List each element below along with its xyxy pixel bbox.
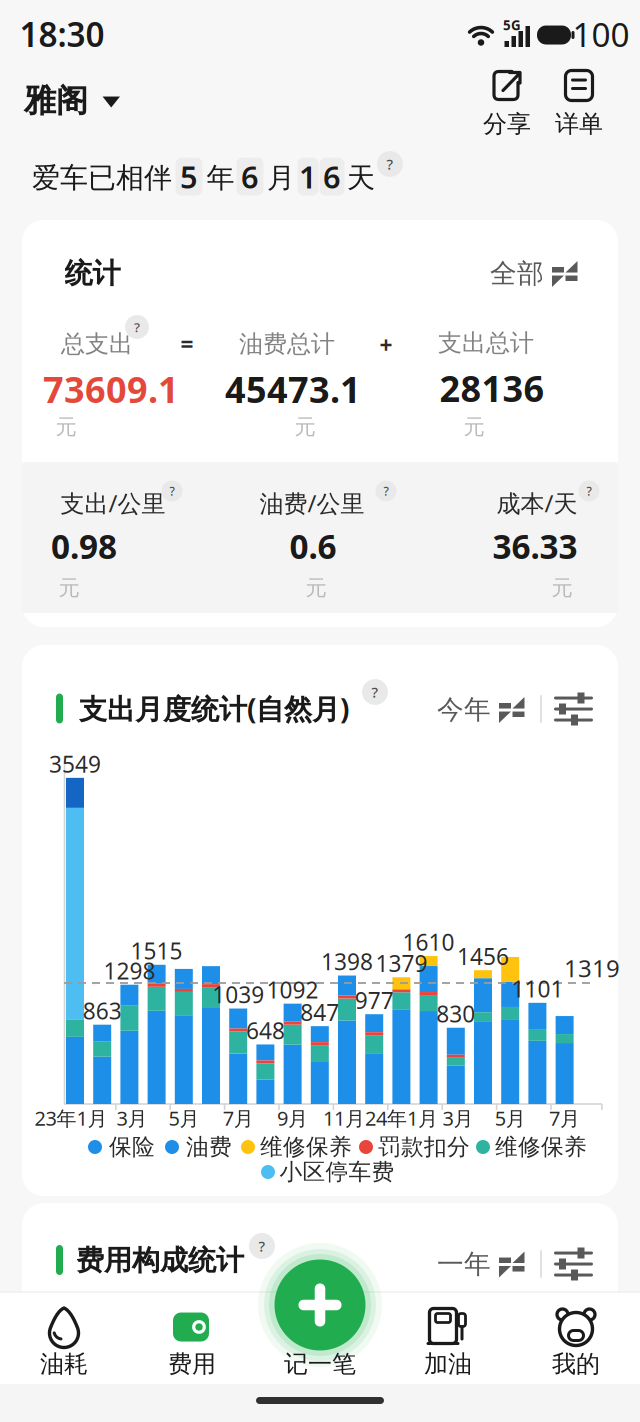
button[interactable]: ? <box>578 480 599 501</box>
staticText: 元 <box>551 575 572 601</box>
staticText: 24年1月 <box>365 1105 438 1131</box>
staticText: 油耗 <box>40 1349 88 1379</box>
button[interactable]: 全部 <box>490 251 582 295</box>
staticText: 1456 <box>457 941 509 971</box>
staticText: 3月 <box>442 1105 473 1131</box>
staticText: 一年 <box>437 1248 491 1280</box>
button[interactable]: 我的 <box>521 1302 631 1378</box>
button[interactable]: ? <box>362 679 388 705</box>
staticText: 支出月度统计(自然月) <box>79 690 349 727</box>
staticText: 油费 <box>186 1133 232 1161</box>
staticText: 6 <box>241 156 259 197</box>
button[interactable]: 加油 <box>393 1302 503 1378</box>
staticText: 1610 <box>403 927 455 957</box>
staticText: 1 <box>299 156 317 197</box>
staticText: 3月 <box>116 1105 147 1131</box>
staticText: 1039 <box>212 979 264 1010</box>
button[interactable] <box>550 1244 596 1284</box>
staticText: 月 <box>267 161 295 195</box>
staticText: 我的 <box>552 1349 600 1379</box>
staticText: 23年1月 <box>34 1105 107 1131</box>
staticText: ? <box>386 154 393 174</box>
button[interactable] <box>550 689 596 729</box>
staticText: 成本/天 <box>496 487 577 519</box>
staticText: 费用 <box>168 1349 216 1379</box>
staticText: ? <box>371 682 378 702</box>
staticText: 7月 <box>223 1105 254 1131</box>
staticText: 830 <box>436 999 475 1029</box>
button[interactable] <box>274 1259 365 1350</box>
button[interactable]: 详单 <box>537 70 621 134</box>
staticText: 18:30 <box>19 12 104 56</box>
staticText: 1092 <box>267 975 319 1005</box>
staticText: 5月 <box>495 1105 526 1131</box>
staticText: 5月 <box>168 1105 199 1131</box>
staticText: 0.6 <box>289 524 336 568</box>
staticText: 847 <box>300 997 339 1027</box>
staticText: 支出总计 <box>438 328 534 358</box>
staticText: 维修保养 <box>260 1133 352 1161</box>
staticText: 元 <box>463 414 484 440</box>
staticText: 油费总计 <box>239 329 335 359</box>
staticText: ? <box>258 1236 265 1256</box>
staticText: 分享 <box>483 109 531 139</box>
staticText: 费用构成统计 <box>76 1243 244 1278</box>
button[interactable]: ? <box>125 315 149 339</box>
staticText: 648 <box>246 1015 285 1045</box>
staticText: = <box>180 329 193 359</box>
staticText: 7月 <box>549 1105 580 1131</box>
staticText: ? <box>134 318 140 336</box>
staticText: 详单 <box>555 109 603 139</box>
staticText: 6 <box>323 156 341 197</box>
staticText: 元 <box>305 575 326 601</box>
staticText: 加油 <box>424 1349 472 1379</box>
button[interactable]: 雅阁 <box>20 76 130 126</box>
staticText: 罚款扣分 <box>378 1133 470 1161</box>
staticText: 雅阁 <box>24 81 88 120</box>
button[interactable]: 一年 <box>437 1242 529 1286</box>
staticText: 100 <box>572 12 629 56</box>
staticText: 总支出 <box>61 329 133 359</box>
button[interactable]: ? <box>375 480 396 501</box>
staticText: 统计 <box>64 256 120 291</box>
staticText: 1319 <box>564 952 620 984</box>
staticText: 支出/公里 <box>60 487 165 519</box>
staticText: 28136 <box>439 364 544 412</box>
staticText: 小区停车费 <box>279 1158 394 1186</box>
button[interactable]: ? <box>249 1233 275 1259</box>
button[interactable]: ? <box>377 151 403 177</box>
staticText: 全部 <box>490 257 544 290</box>
button[interactable]: ? <box>161 480 182 501</box>
staticText: 0.98 <box>51 524 117 568</box>
staticText: 863 <box>83 996 122 1026</box>
staticText: 11月 <box>323 1105 365 1131</box>
button[interactable]: 费用 <box>137 1302 247 1378</box>
staticText: 1515 <box>131 936 183 966</box>
staticText: ? <box>169 483 174 499</box>
staticText: 1398 <box>321 946 373 977</box>
button[interactable]: 分享 <box>465 70 549 134</box>
staticText: 维修保养 <box>495 1133 587 1161</box>
staticText: 5 <box>180 156 198 197</box>
staticText: 9月 <box>277 1105 308 1131</box>
button[interactable]: 今年 <box>437 687 529 731</box>
button[interactable]: 油耗 <box>9 1302 119 1378</box>
staticText: 1101 <box>511 974 563 1004</box>
staticText: 1298 <box>103 956 155 986</box>
staticText: 油费/公里 <box>259 487 364 519</box>
staticText: 今年 <box>437 693 491 726</box>
staticText: 3549 <box>49 749 101 779</box>
staticText: 天 <box>347 161 375 195</box>
staticText: 5G <box>503 16 521 34</box>
staticText: 73609.1 <box>43 365 179 413</box>
staticText: 元 <box>294 414 315 440</box>
staticText: 36.33 <box>492 524 577 568</box>
staticText: 977 <box>355 985 394 1015</box>
staticText: ? <box>586 483 591 499</box>
staticText: 元 <box>55 414 76 440</box>
staticText: 45473.1 <box>225 365 361 413</box>
staticText: 爱车已相伴 <box>32 161 172 195</box>
staticText: 记一笔 <box>284 1349 356 1379</box>
staticText: 1379 <box>375 948 427 978</box>
staticText: ? <box>383 483 388 499</box>
